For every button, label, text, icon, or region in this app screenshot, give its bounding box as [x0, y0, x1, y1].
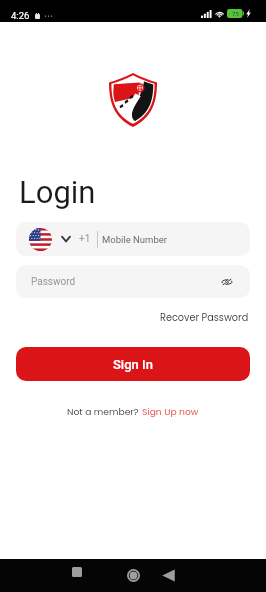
- button[interactable]: +1: [16, 222, 250, 256]
- staticText: Not a member?: [67, 405, 142, 418]
- button[interactable]: Sign In: [16, 347, 250, 381]
- staticText: Sign In: [113, 357, 153, 372]
- staticText: Login: [19, 174, 96, 210]
- staticText: 4:26: [11, 10, 30, 21]
- button[interactable]: Password: [16, 265, 250, 298]
- staticText: Recover Password: [160, 311, 249, 325]
- button[interactable]: Home: [120, 562, 146, 588]
- staticText: Sign Up now: [142, 405, 199, 418]
- button[interactable]: Recover Password: [155, 308, 253, 327]
- staticText: +1: [79, 233, 91, 245]
- button[interactable]: Show password: [217, 272, 237, 292]
- button[interactable]: Back: [155, 562, 181, 588]
- staticText: Mobile Number: [102, 234, 167, 245]
- button[interactable]: Recents: [64, 559, 90, 584]
- button[interactable]: Sign Up now: [142, 405, 199, 418]
- staticText: 75: [232, 10, 239, 18]
- staticText: Password: [31, 276, 76, 288]
